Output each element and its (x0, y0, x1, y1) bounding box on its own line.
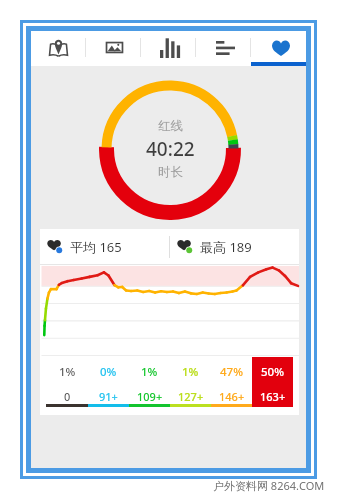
staticText: 163+ (260, 389, 286, 404)
button[interactable]: 最高 189 (170, 229, 299, 264)
staticText: 最高 189 (200, 238, 252, 256)
staticText: 红线 (158, 118, 183, 134)
button[interactable]: Splits (196, 31, 251, 66)
staticText: 1% (141, 364, 158, 380)
staticText: 40:22 (146, 136, 195, 162)
button[interactable]: Photos (86, 31, 141, 66)
staticText: 0% (100, 364, 117, 380)
staticText: 91+ (99, 389, 118, 404)
button[interactable]: 0% (88, 357, 129, 404)
staticText: 109+ (137, 389, 163, 404)
button[interactable]: 1% (170, 357, 211, 404)
staticText: 户外资料网 8264.COM (213, 478, 325, 493)
staticText: 1% (59, 364, 76, 380)
staticText: 平均 165 (70, 238, 122, 256)
button[interactable]: 50% (252, 357, 293, 404)
button[interactable]: 1% (129, 357, 170, 404)
button[interactable]: 47% (211, 357, 252, 404)
button[interactable]: Heart rate (251, 31, 306, 66)
button[interactable]: Statistics (141, 31, 196, 66)
button[interactable]: 平均 165 (40, 229, 169, 264)
button[interactable]: 1% (46, 357, 88, 404)
staticText: 时长 (158, 164, 183, 180)
staticText: 1% (182, 364, 199, 380)
button[interactable]: Map (31, 31, 86, 66)
staticText: 146+ (219, 389, 245, 404)
staticText: 50% (261, 364, 284, 380)
staticText: 47% (220, 364, 243, 380)
staticText: 0 (64, 389, 71, 404)
staticText: 127+ (178, 389, 204, 404)
